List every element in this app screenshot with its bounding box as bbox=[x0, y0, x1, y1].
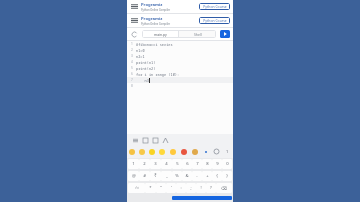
button[interactable]: Chart bbox=[161, 136, 169, 144]
staticText: 4 bbox=[165, 161, 168, 167]
button[interactable]: 0 bbox=[222, 159, 232, 169]
button[interactable]: % bbox=[172, 171, 182, 181]
button[interactable]: ? bbox=[206, 183, 216, 193]
button[interactable]: Emoji bbox=[149, 149, 155, 155]
staticText: 2 bbox=[131, 48, 133, 52]
button[interactable]: : bbox=[176, 183, 186, 193]
staticText: n3 bbox=[136, 78, 149, 83]
staticText: #fibonacci series bbox=[136, 42, 173, 47]
staticText: Python Online Compiler bbox=[141, 8, 171, 12]
button[interactable]: ⌫ bbox=[216, 183, 232, 193]
button[interactable]: ! bbox=[196, 183, 206, 193]
button[interactable]: 3 bbox=[150, 159, 161, 169]
staticText: Programiz bbox=[141, 2, 163, 8]
staticText: 6 bbox=[186, 161, 189, 167]
staticText: for i in range (10): bbox=[136, 72, 180, 77]
staticText: Python Course bbox=[203, 4, 227, 9]
staticText: 8 bbox=[131, 84, 133, 88]
staticText: 1 bbox=[131, 42, 133, 46]
staticText: ? bbox=[210, 185, 212, 191]
staticText: @ bbox=[132, 173, 136, 179]
button[interactable]: & bbox=[182, 171, 192, 181]
button[interactable]: Emoji bbox=[139, 149, 145, 155]
button[interactable]: List bbox=[131, 136, 139, 144]
staticText: Python Online Compiler bbox=[141, 22, 171, 26]
staticText: " bbox=[160, 185, 162, 191]
button[interactable]: ₹ bbox=[150, 171, 161, 181]
button[interactable]: # bbox=[139, 171, 150, 181]
button[interactable]: Shell bbox=[179, 30, 216, 38]
button[interactable]: Emoji bbox=[181, 149, 187, 155]
staticText: 0 bbox=[226, 161, 229, 167]
staticText: n1=0 bbox=[136, 48, 145, 53]
button[interactable]: main.py bbox=[142, 30, 178, 38]
staticText: 8 bbox=[206, 161, 209, 167]
button[interactable]: Emoji bbox=[159, 149, 165, 155]
button[interactable]: @ bbox=[128, 171, 139, 181]
staticText: Shell bbox=[194, 32, 202, 37]
button[interactable]: * bbox=[145, 183, 156, 193]
staticText: 7 bbox=[196, 161, 199, 167]
button[interactable]: Reset bbox=[130, 30, 138, 38]
button[interactable]: " bbox=[156, 183, 166, 193]
button[interactable]: 9 bbox=[212, 159, 222, 169]
button[interactable]: _ bbox=[161, 171, 172, 181]
button[interactable]: Menu bbox=[130, 2, 139, 11]
button[interactable]: Copy bbox=[141, 136, 149, 144]
staticText: % bbox=[175, 173, 179, 179]
button[interactable]: Enter bbox=[172, 196, 232, 200]
staticText: 1 bbox=[132, 161, 135, 167]
button[interactable]: 8 bbox=[202, 159, 212, 169]
staticText: print(n1) bbox=[136, 60, 156, 65]
staticText: 5 bbox=[176, 161, 179, 167]
button[interactable]: Paste bbox=[151, 136, 159, 144]
button[interactable]: - bbox=[192, 171, 202, 181]
staticText: } bbox=[226, 173, 228, 179]
staticText: 3 bbox=[131, 54, 133, 58]
button[interactable]: Python Course bbox=[199, 3, 230, 10]
staticText: 6 bbox=[131, 72, 133, 76]
staticText: * bbox=[149, 185, 152, 191]
staticText: 4 bbox=[131, 60, 133, 64]
staticText: : bbox=[180, 185, 182, 191]
button[interactable]: 1 bbox=[128, 159, 139, 169]
button[interactable]: } bbox=[222, 171, 232, 181]
staticText: ; bbox=[190, 185, 192, 191]
button[interactable]: =\< bbox=[128, 183, 145, 193]
staticText: 9 bbox=[216, 161, 219, 167]
button[interactable]: { bbox=[212, 171, 222, 181]
staticText: =\< bbox=[135, 186, 139, 190]
button[interactable]: 7 bbox=[192, 159, 202, 169]
button[interactable]: Emoji bbox=[192, 149, 198, 155]
staticText: main.py bbox=[154, 32, 167, 37]
staticText: { bbox=[216, 173, 218, 179]
staticText: ⌫ bbox=[221, 186, 227, 191]
button[interactable]: Emoji bbox=[129, 149, 135, 155]
button[interactable]: ' bbox=[166, 183, 176, 193]
staticText: - bbox=[196, 173, 198, 179]
staticText: Programiz bbox=[141, 16, 163, 22]
button[interactable]: Menu bbox=[130, 16, 139, 25]
staticText: 1 bbox=[226, 149, 229, 154]
staticText: print(n2) bbox=[136, 66, 156, 71]
staticText: Python Course bbox=[203, 18, 227, 23]
button[interactable]: + bbox=[202, 171, 212, 181]
staticText: 7 bbox=[131, 78, 133, 82]
staticText: + bbox=[206, 173, 209, 179]
button[interactable]: 2 bbox=[139, 159, 150, 169]
staticText: ₹ bbox=[154, 173, 157, 179]
button[interactable]: Emoji bbox=[170, 149, 176, 155]
button[interactable]: 5 bbox=[172, 159, 182, 169]
button[interactable]: 4 bbox=[161, 159, 172, 169]
button[interactable]: 6 bbox=[182, 159, 192, 169]
button[interactable]: ; bbox=[186, 183, 196, 193]
staticText: ! bbox=[200, 185, 202, 191]
staticText: & bbox=[185, 173, 189, 179]
staticText: 3 bbox=[154, 161, 157, 167]
button[interactable]: Python Course bbox=[199, 17, 230, 24]
staticText: 5 bbox=[131, 66, 133, 70]
staticText: # bbox=[143, 173, 146, 179]
staticText: ' bbox=[171, 185, 172, 191]
button[interactable]: Run bbox=[220, 30, 230, 38]
